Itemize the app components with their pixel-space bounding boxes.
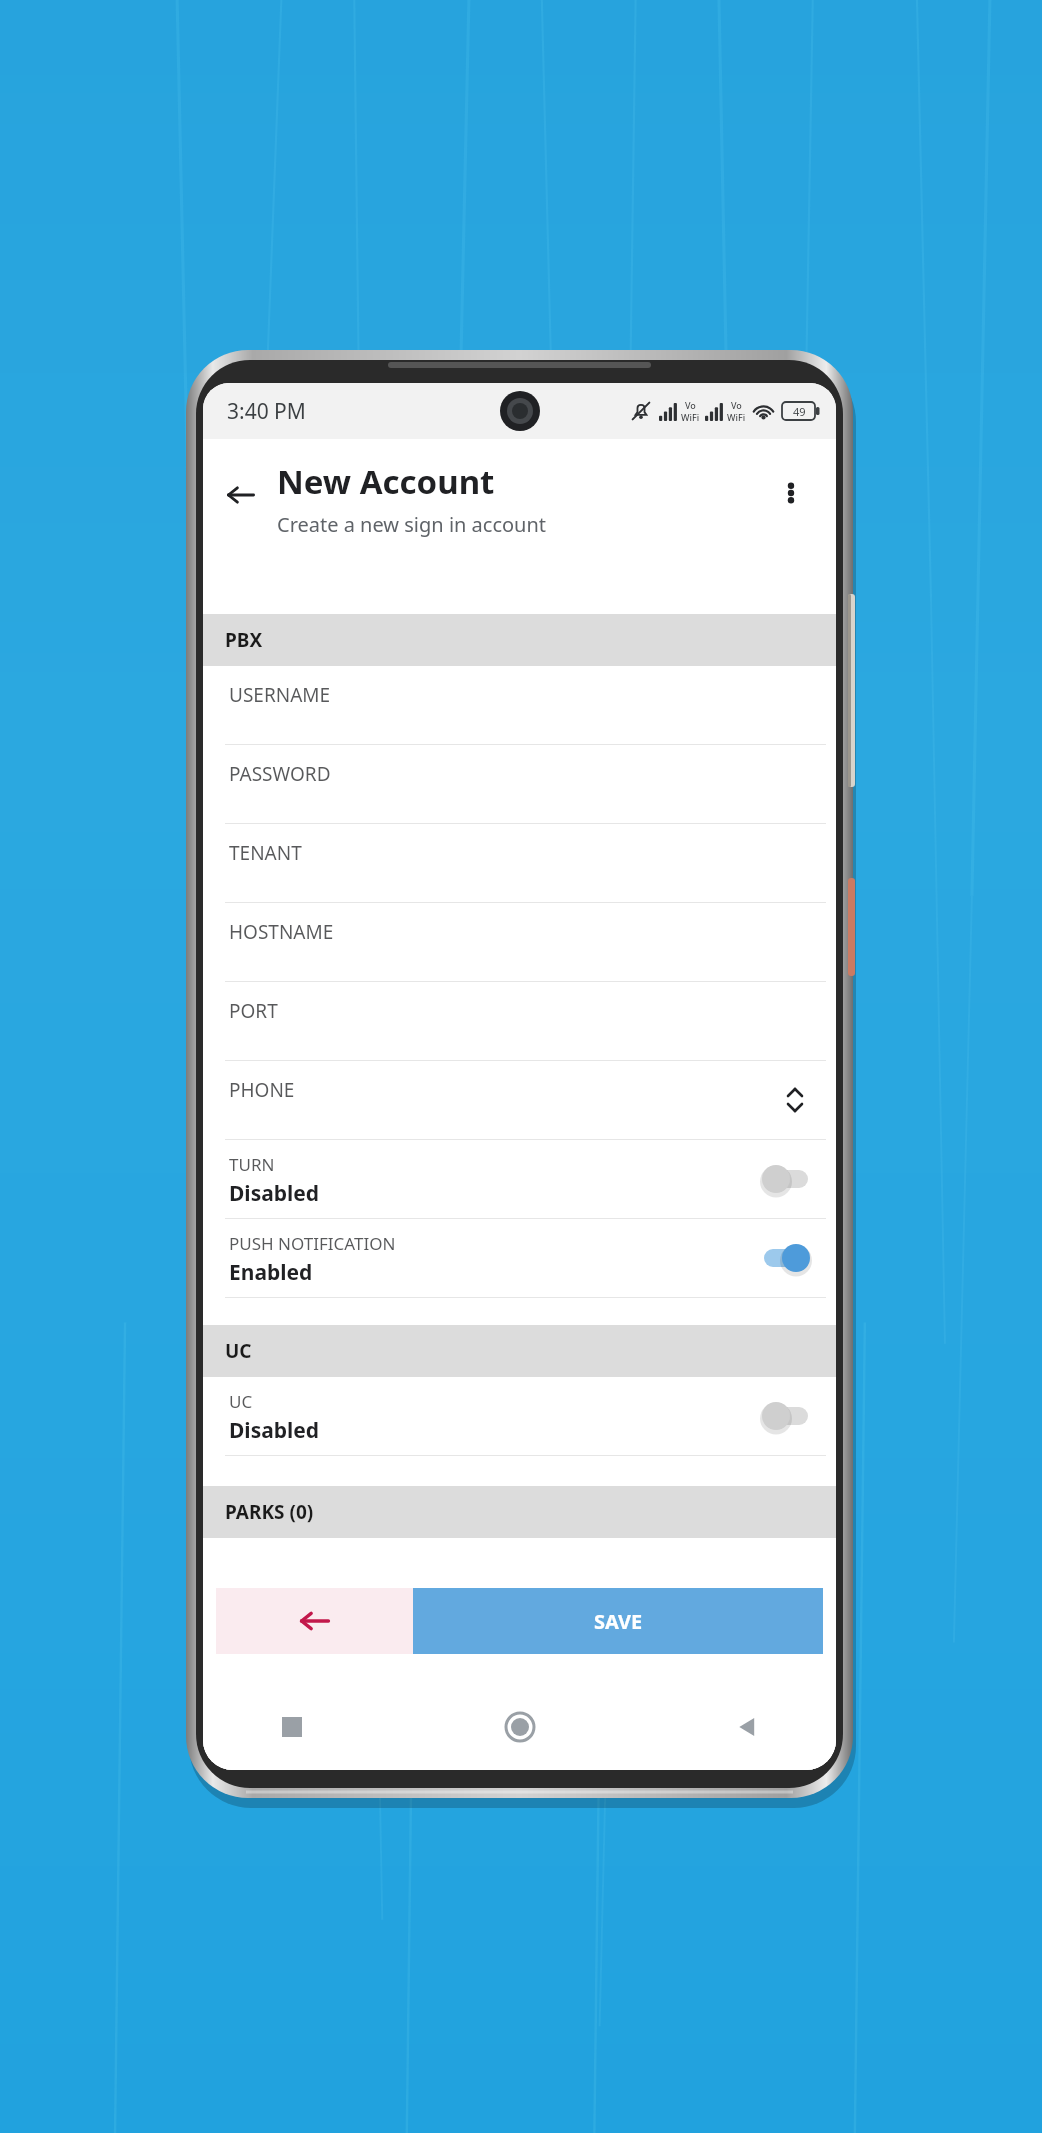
button[interactable]: Back <box>213 467 269 523</box>
button[interactable]: PHONE <box>203 1061 836 1140</box>
staticText: Vo <box>731 399 742 411</box>
staticText: Vo <box>685 399 696 411</box>
staticText: 49 <box>793 404 806 419</box>
staticText: USERNAME <box>229 682 331 708</box>
staticText: Disabled <box>229 1179 320 1208</box>
staticText: UC <box>225 1338 252 1364</box>
button[interactable]: Disabled toggle <box>760 1399 812 1433</box>
button[interactable]: PASSWORD <box>203 745 836 824</box>
button[interactable]: Home <box>491 1698 549 1756</box>
button[interactable]: USERNAME <box>203 666 836 745</box>
button[interactable]: HOSTNAME <box>203 903 836 982</box>
staticText: PASSWORD <box>229 761 331 787</box>
button[interactable]: Recent apps <box>263 1698 321 1756</box>
staticText: TURN <box>229 1153 275 1176</box>
staticText: 3:40 PM <box>227 397 306 426</box>
button[interactable]: Back <box>718 1698 776 1756</box>
button[interactable]: More options <box>763 465 819 521</box>
staticText: Enabled <box>229 1258 313 1287</box>
button[interactable]: SAVE <box>413 1588 823 1654</box>
button[interactable]: Enabled toggle <box>760 1241 812 1275</box>
staticText: PBX <box>225 627 263 653</box>
staticText: New Account <box>277 459 495 504</box>
button[interactable]: TURN <box>203 1140 836 1219</box>
button[interactable]: PUSH NOTIFICATION <box>203 1219 836 1298</box>
button[interactable]: UC <box>203 1377 836 1456</box>
staticText: TENANT <box>229 840 302 866</box>
staticText: WiFi <box>681 411 700 423</box>
button[interactable]: TENANT <box>203 824 836 903</box>
staticText: PUSH NOTIFICATION <box>229 1232 396 1255</box>
staticText: UC <box>229 1390 253 1413</box>
button[interactable]: Back <box>216 1588 413 1654</box>
staticText: PHONE <box>229 1077 295 1103</box>
button[interactable]: Disabled toggle <box>760 1162 812 1196</box>
staticText: Disabled <box>229 1416 320 1445</box>
staticText: PORT <box>229 998 278 1024</box>
staticText: PARKS (0) <box>225 1499 314 1525</box>
button[interactable]: PORT <box>203 982 836 1061</box>
staticText: WiFi <box>727 411 746 423</box>
staticText: SAVE <box>594 1608 643 1635</box>
staticText: Create a new sign in account <box>277 511 547 538</box>
staticText: HOSTNAME <box>229 919 334 945</box>
